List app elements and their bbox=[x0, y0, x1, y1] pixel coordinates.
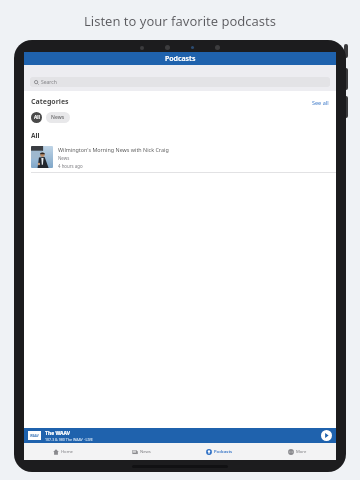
staticText: More bbox=[296, 449, 307, 455]
staticText: Listen to your favorite podcasts bbox=[0, 12, 360, 30]
button[interactable]: Play bbox=[321, 430, 332, 441]
staticText: Podcasts bbox=[165, 54, 196, 64]
staticText: News bbox=[140, 449, 151, 455]
staticText: See all bbox=[312, 99, 329, 106]
button[interactable]: WAAV bbox=[24, 428, 336, 443]
staticText: WAAV bbox=[30, 434, 39, 438]
staticText: Categories bbox=[31, 97, 69, 107]
staticText: 4 hours ago bbox=[58, 163, 83, 169]
staticText: News bbox=[51, 114, 65, 121]
staticText: All bbox=[31, 131, 40, 140]
button[interactable]: All bbox=[31, 112, 42, 123]
button[interactable]: Home bbox=[24, 443, 102, 460]
button[interactable]: News bbox=[46, 112, 70, 123]
button[interactable]: News bbox=[102, 443, 180, 460]
button[interactable]: More bbox=[258, 443, 336, 460]
staticText: News bbox=[58, 155, 70, 161]
button[interactable]: Search bbox=[30, 77, 330, 87]
staticText: Podcasts bbox=[214, 449, 233, 455]
button[interactable]: See all bbox=[312, 99, 329, 106]
staticText: All bbox=[34, 114, 40, 121]
staticText: Home bbox=[61, 449, 73, 455]
staticText: 107.3 & 980 The WAAV · LIVE bbox=[45, 437, 93, 442]
staticText: The WAAV bbox=[45, 430, 71, 437]
staticText: Wilmington's Morning News with Nick Crai… bbox=[58, 146, 169, 153]
button[interactable]: Podcasts bbox=[180, 443, 258, 460]
staticText: Search bbox=[41, 79, 57, 86]
button[interactable]: Wilmington's Morning News with Nick Crai… bbox=[24, 144, 336, 172]
